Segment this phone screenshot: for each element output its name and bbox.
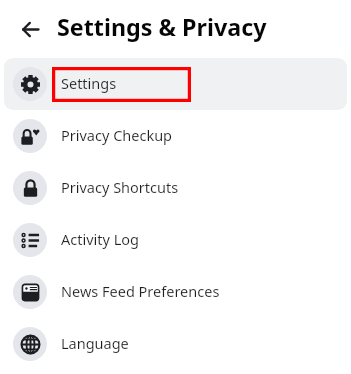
staticText: Language <box>61 333 129 353</box>
staticText: Privacy Shortcuts <box>61 177 179 197</box>
button[interactable]: Privacy Checkup <box>4 110 347 162</box>
staticText: Activity Log <box>61 229 139 249</box>
button[interactable]: Settings <box>4 58 347 110</box>
button[interactable]: News Feed Preferences <box>4 266 347 318</box>
button[interactable]: Language <box>4 318 347 370</box>
staticText: Privacy Checkup <box>61 125 173 145</box>
button[interactable]: Back <box>13 12 47 46</box>
button[interactable]: Activity Log <box>4 214 347 266</box>
staticText: News Feed Preferences <box>61 281 220 301</box>
button[interactable]: Privacy Shortcuts <box>4 162 347 214</box>
staticText: Settings & Privacy <box>57 11 267 43</box>
staticText: Settings <box>61 73 117 93</box>
